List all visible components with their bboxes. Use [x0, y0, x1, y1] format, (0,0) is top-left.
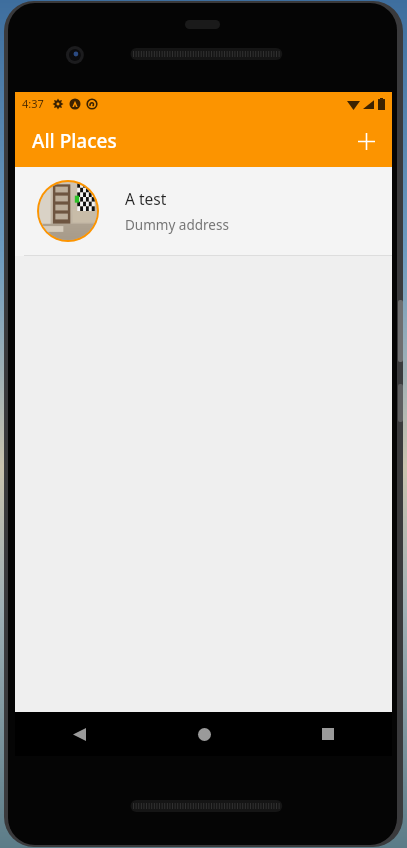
button[interactable]: A test — [15, 167, 392, 256]
button[interactable]: Home — [186, 716, 222, 752]
button[interactable]: Recent apps — [310, 716, 346, 752]
button[interactable]: Back — [61, 716, 97, 752]
button[interactable]: Add place — [346, 121, 386, 161]
staticText: Dummy address — [125, 216, 229, 234]
staticText: All Places — [32, 128, 117, 154]
staticText: 4:37 — [22, 96, 44, 111]
staticText: A test — [125, 188, 167, 209]
